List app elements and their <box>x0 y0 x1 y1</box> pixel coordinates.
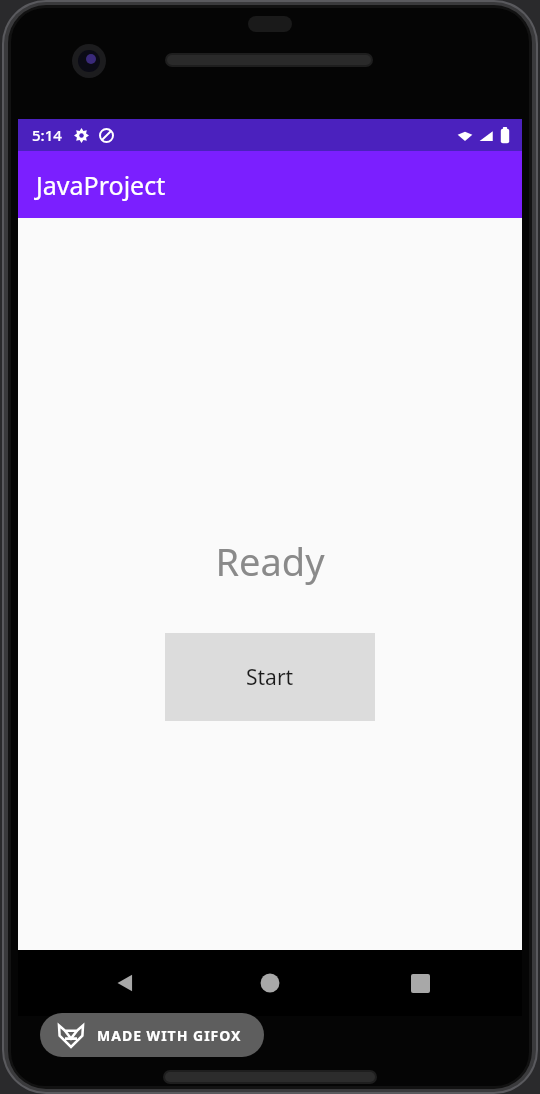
staticText: Start <box>246 663 294 692</box>
staticText: MADE WITH GIFOX <box>97 1026 242 1045</box>
button[interactable]: Recent apps <box>380 950 460 1016</box>
button[interactable]: Home <box>225 950 315 1016</box>
staticText: Ready <box>215 535 325 587</box>
staticText: 5:14 <box>32 125 62 145</box>
button[interactable]: Back <box>104 950 225 1016</box>
button[interactable]: Start <box>165 633 375 721</box>
staticText: JavaProject <box>36 168 166 202</box>
